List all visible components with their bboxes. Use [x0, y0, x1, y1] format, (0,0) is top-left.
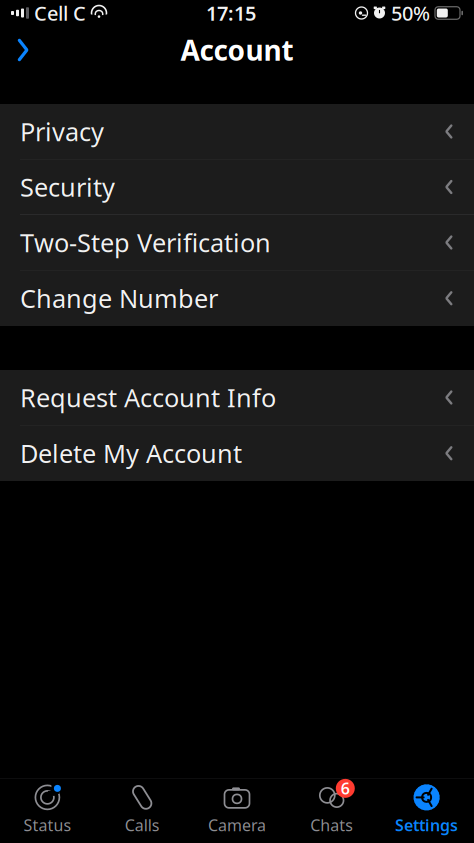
staticText: 17:15	[206, 0, 256, 26]
staticText: Status	[23, 814, 71, 836]
staticText: Calls	[125, 814, 160, 836]
button[interactable]: Security	[0, 159, 474, 215]
button[interactable]: Settings	[379, 776, 474, 843]
staticText: 6	[341, 778, 350, 799]
staticText: Delete My Account	[20, 436, 242, 470]
staticText: Cell C	[34, 0, 86, 26]
button[interactable]: Delete My Account	[0, 425, 474, 481]
staticText: Request Account Info	[20, 381, 276, 414]
button[interactable]: Status	[0, 776, 95, 843]
staticText: 50%	[391, 0, 430, 26]
staticText: Security	[20, 170, 115, 204]
button[interactable]: Change Number	[0, 270, 474, 326]
staticText: Chats	[310, 814, 353, 836]
staticText: Two-Step Verification	[20, 226, 271, 259]
staticText: Privacy	[20, 115, 104, 148]
staticText: Camera	[208, 814, 266, 836]
button[interactable]: Camera	[190, 776, 284, 843]
staticText: Settings	[395, 814, 458, 836]
button[interactable]: Request Account Info	[0, 370, 474, 425]
staticText: Change Number	[20, 281, 218, 315]
button[interactable]: Two-Step Verification	[0, 215, 474, 270]
button[interactable]: Back	[0, 28, 46, 72]
button[interactable]: Calls	[95, 776, 190, 843]
button[interactable]: 6	[284, 776, 379, 843]
button[interactable]: Privacy	[0, 104, 474, 159]
staticText: Account	[180, 31, 293, 69]
